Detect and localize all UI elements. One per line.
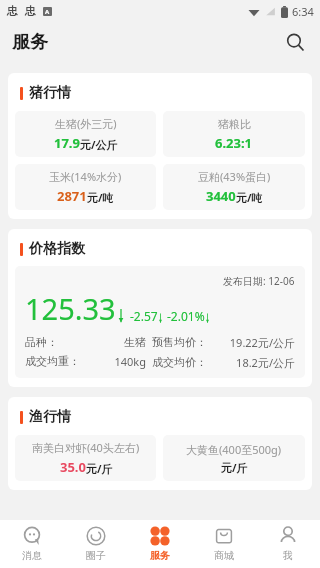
staticText: 价格指数 xyxy=(29,240,85,258)
staticText: 元/斤 xyxy=(86,461,113,476)
button[interactable]: 消息 xyxy=(0,520,64,568)
button[interactable]: 商城 xyxy=(192,520,256,568)
button[interactable]: 大黄鱼(400至500g) xyxy=(163,435,305,481)
staticText: 渔行情 xyxy=(29,408,71,426)
staticText: 3440 xyxy=(206,187,236,205)
staticText: 我 xyxy=(283,549,293,562)
staticText: 忠 xyxy=(7,4,18,18)
staticText: 服务 xyxy=(12,31,48,54)
staticText: 品种： xyxy=(25,335,58,349)
staticText: 成交均价： xyxy=(152,355,207,369)
staticText: 元/公斤 xyxy=(80,137,118,152)
staticText: 6:34 xyxy=(292,4,314,19)
button[interactable]: Search xyxy=(280,27,310,57)
staticText: 忠 xyxy=(25,4,36,18)
staticText: 2871 xyxy=(57,187,87,205)
staticText: 商城 xyxy=(214,549,234,562)
staticText: 猪行情 xyxy=(29,84,71,102)
staticText: -2.57 xyxy=(130,308,158,324)
staticText: 6.23:1 xyxy=(215,134,253,152)
staticText: 发布日期: 12-06 xyxy=(223,274,295,288)
staticText: 19.22元/公斤 xyxy=(207,335,295,350)
staticText: A xyxy=(45,8,50,16)
staticText: 服务 xyxy=(150,549,170,562)
staticText: 圈子 xyxy=(86,549,106,562)
staticText: 生猪 xyxy=(58,335,146,349)
staticText: 125.33 xyxy=(25,289,116,328)
staticText: 猪粮比 xyxy=(218,117,251,131)
button[interactable]: 我 xyxy=(256,520,320,568)
staticText: 成交均重： xyxy=(25,354,80,368)
button[interactable]: 渔行情 xyxy=(8,397,312,490)
button[interactable]: 南美白对虾(40头左右) xyxy=(15,435,156,481)
staticText: 18.2元/公斤 xyxy=(207,355,295,370)
staticText: 预售均价： xyxy=(152,335,207,349)
staticText: 元/斤 xyxy=(221,460,248,475)
staticText: 消息 xyxy=(22,549,42,562)
button[interactable]: 生猪(外三元) xyxy=(15,111,156,157)
staticText: 元/吨 xyxy=(87,190,114,205)
staticText: 140kg xyxy=(80,354,146,369)
button[interactable]: 玉米(14%水分) xyxy=(15,164,156,210)
button[interactable]: 服务 xyxy=(128,520,192,568)
staticText: 17.9 xyxy=(54,134,80,152)
button[interactable]: 豆粕(43%蛋白) xyxy=(163,164,305,210)
staticText: 南美白对虾(40头左右) xyxy=(32,440,140,455)
staticText: 豆粕(43%蛋白) xyxy=(198,169,271,184)
staticText: 生猪(外三元) xyxy=(55,116,117,131)
button[interactable]: 猪行情 xyxy=(8,73,312,219)
staticText: 玉米(14%水分) xyxy=(49,169,122,184)
staticText: 35.0 xyxy=(60,458,86,476)
button[interactable]: 猪粮比 xyxy=(163,111,305,157)
button[interactable]: 圈子 xyxy=(64,520,128,568)
staticText: 元/吨 xyxy=(236,190,263,205)
button[interactable]: 价格指数 xyxy=(8,229,312,387)
staticText: -2.01% xyxy=(167,308,205,324)
staticText: 大黄鱼(400至500g) xyxy=(186,442,282,457)
